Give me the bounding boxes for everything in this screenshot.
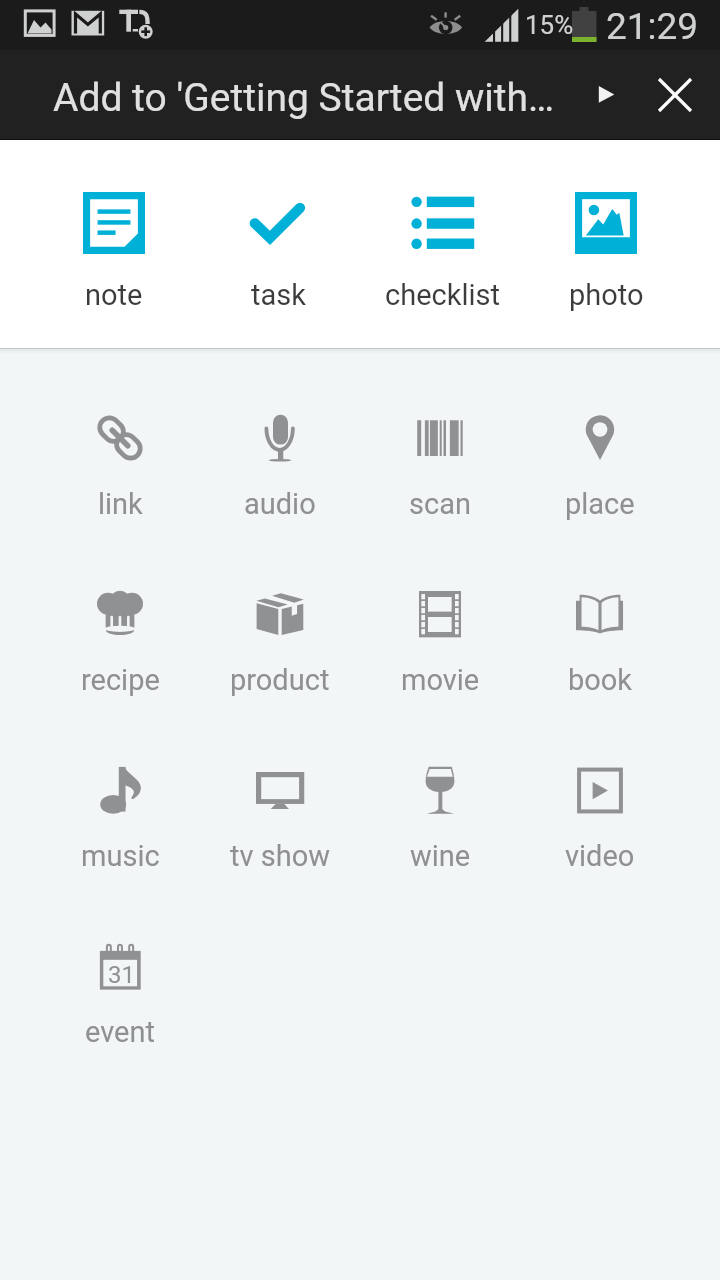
button[interactable]: wine [360,742,520,918]
staticText: note [85,278,143,312]
staticText: 21:29 [606,5,699,48]
button[interactable]: 31 [40,918,200,1094]
button[interactable]: book [520,566,680,742]
button[interactable]: scan [360,390,520,566]
staticText: video [565,839,635,873]
button[interactable]: movie [360,566,520,742]
staticText: scan [409,487,471,521]
button[interactable]: link [40,390,200,566]
button[interactable]: audio [200,390,360,566]
staticText: task [251,278,306,312]
staticText: Add to 'Getting Started with… [53,75,555,121]
staticText: book [568,663,633,697]
button[interactable]: product [200,566,360,742]
staticText: audio [244,487,316,521]
staticText: 31 [108,961,135,989]
staticText: tv show [230,839,330,873]
staticText: wine [410,839,471,873]
button[interactable]: recipe [40,566,200,742]
button[interactable]: photo [524,140,688,348]
button[interactable]: tv show [200,742,360,918]
staticText: 15% [525,10,574,40]
button[interactable]: task [196,140,360,348]
staticText: movie [401,663,480,697]
button[interactable]: note [32,140,196,348]
button[interactable]: Close [645,65,705,125]
staticText: photo [569,278,644,312]
staticText: event [85,1015,155,1049]
staticText: music [81,839,160,873]
button[interactable]: checklist [360,140,524,348]
staticText: product [230,663,330,697]
staticText: recipe [81,663,160,697]
staticText: place [565,487,635,521]
button[interactable]: Play [578,65,638,125]
button[interactable]: video [520,742,680,918]
staticText: checklist [385,278,500,312]
button[interactable]: music [40,742,200,918]
staticText: link [98,487,143,521]
button[interactable]: place [520,390,680,566]
